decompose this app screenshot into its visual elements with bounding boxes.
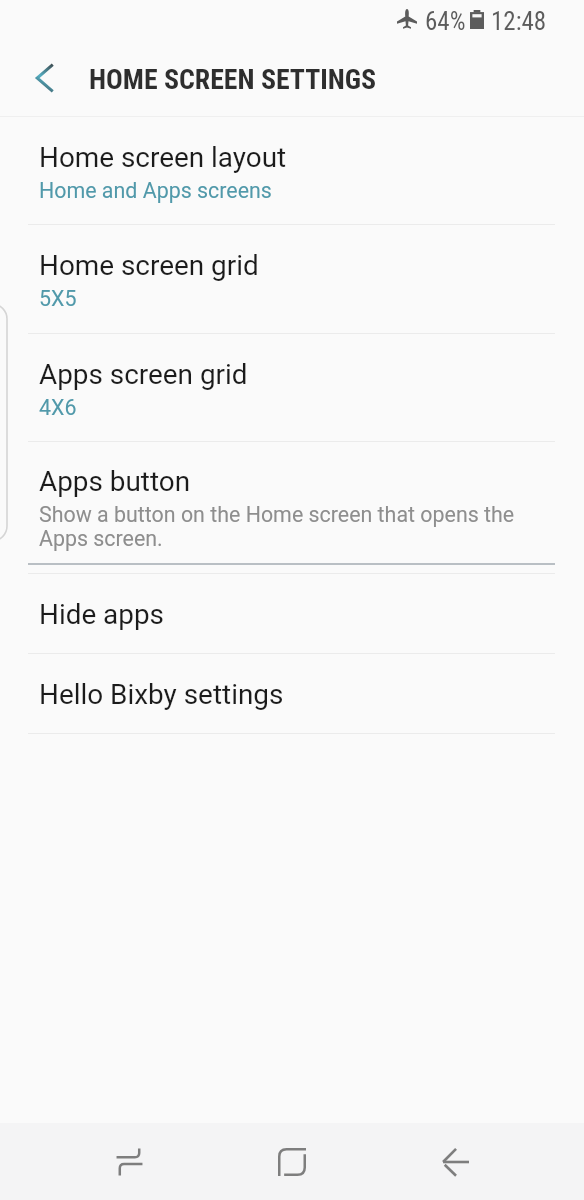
- button[interactable]: Apps button: [0, 442, 584, 573]
- staticText: 64%: [425, 7, 466, 36]
- button[interactable]: Hide apps: [0, 574, 584, 653]
- staticText: HOME SCREEN SETTINGS: [89, 63, 377, 96]
- button[interactable]: Navigate up: [21, 55, 67, 101]
- button[interactable]: Home: [244, 1123, 340, 1200]
- staticText: Home screen grid: [39, 249, 259, 282]
- staticText: Home and Apps screens: [39, 178, 272, 203]
- button[interactable]: Back: [407, 1123, 503, 1200]
- staticText: Show a button on the Home screen that op…: [39, 502, 515, 552]
- button[interactable]: Home screen layout: [0, 117, 584, 224]
- staticText: Apps button: [39, 465, 191, 498]
- button[interactable]: Home screen grid: [0, 225, 584, 333]
- staticText: Hide apps: [39, 598, 165, 631]
- button[interactable]: Recent apps: [81, 1123, 177, 1200]
- staticText: 5X5: [39, 286, 77, 311]
- staticText: Hello Bixby settings: [39, 678, 284, 711]
- staticText: 12:48: [491, 7, 547, 36]
- staticText: Apps screen grid: [39, 358, 248, 391]
- button[interactable]: Apps screen grid: [0, 334, 584, 441]
- staticText: 4X6: [39, 395, 77, 420]
- button[interactable]: Hello Bixby settings: [0, 654, 584, 733]
- staticText: Home screen layout: [39, 141, 287, 174]
